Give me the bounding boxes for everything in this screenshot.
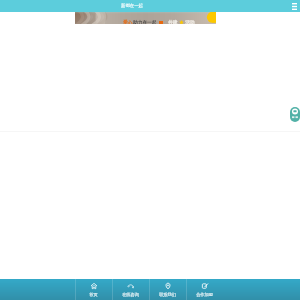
staticText: 爱心 (123, 19, 133, 24)
staticText: 在线咨询 (122, 292, 139, 297)
staticText: 联系我们 (159, 292, 176, 297)
button[interactable]: Menu (289, 0, 300, 12)
staticText: 活动 (185, 19, 195, 24)
button[interactable]: 在线咨询 (112, 279, 149, 300)
button[interactable]: 联系我们 (149, 279, 186, 300)
button[interactable]: 爱心 (75, 12, 216, 24)
button[interactable]: Online customer service (290, 107, 300, 122)
staticText: 首页 (89, 292, 98, 297)
button[interactable]: 首页 (75, 279, 112, 300)
staticText: 助力在一起 (133, 19, 157, 24)
staticText: 共建 (168, 19, 178, 24)
button[interactable]: 合作加盟 (186, 279, 223, 300)
staticText: 新都在一起 (121, 3, 143, 9)
staticText: 合作加盟 (196, 292, 213, 297)
